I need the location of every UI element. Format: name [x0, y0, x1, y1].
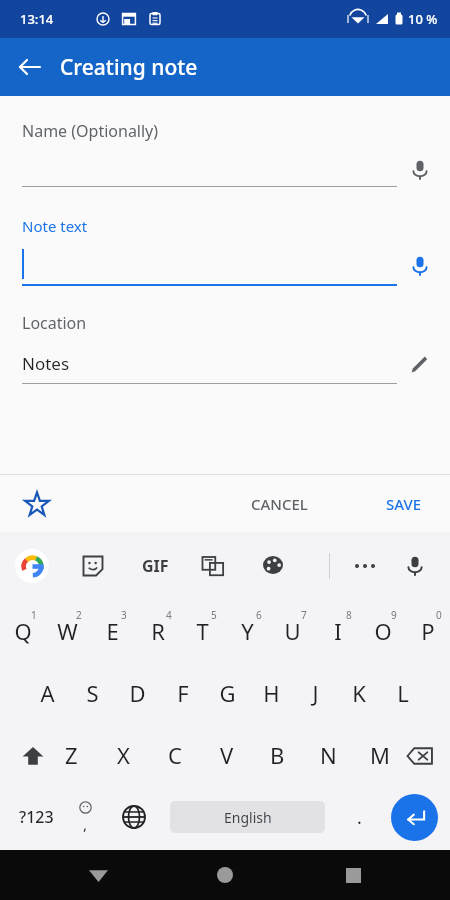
staticText: W [57, 616, 78, 646]
staticText: Location [22, 312, 87, 334]
button[interactable]: V [201, 724, 252, 786]
staticText: D [129, 678, 146, 708]
button[interactable]: A [25, 662, 70, 724]
button[interactable]: T [180, 600, 225, 662]
staticText: Creating note [60, 53, 198, 82]
staticText: Y [241, 616, 254, 646]
staticText: H [263, 678, 280, 708]
staticText: CANCEL [251, 494, 308, 514]
button[interactable]: More options [344, 545, 386, 587]
button[interactable]: G [205, 662, 249, 724]
button[interactable]: E [90, 600, 135, 662]
button[interactable]: D [115, 662, 160, 724]
staticText: 0 [436, 608, 442, 622]
staticText: 1 [31, 608, 37, 622]
button[interactable]: Themes [252, 545, 294, 587]
staticText: 4 [166, 608, 172, 622]
button[interactable]: F [160, 662, 205, 724]
staticText: 2 [76, 608, 82, 622]
button[interactable]: Voice typing [394, 545, 436, 587]
staticText: U [284, 616, 301, 646]
button[interactable]: U [270, 600, 315, 662]
staticText: R [151, 616, 165, 646]
button[interactable]: M [354, 724, 405, 786]
button[interactable]: J [293, 662, 337, 724]
staticText: SAVE [386, 494, 422, 514]
button[interactable]: Switch language [113, 796, 155, 838]
staticText: F [177, 678, 189, 708]
button[interactable]: Back [8, 45, 52, 89]
staticText: English [224, 808, 272, 827]
button[interactable]: Emoji [64, 796, 106, 838]
staticText: Note text [22, 216, 88, 236]
staticText: Notes [22, 352, 70, 375]
button[interactable]: Voice input for note [403, 249, 437, 283]
button[interactable]: Favorite [16, 483, 58, 525]
button[interactable]: K [337, 662, 381, 724]
staticText: I [334, 616, 342, 646]
button[interactable]: ?123 [10, 794, 62, 840]
staticText: V [220, 740, 234, 770]
button[interactable]: GIF [132, 545, 178, 587]
staticText: 5 [211, 608, 217, 622]
staticText: X [117, 740, 130, 770]
staticText: 6 [256, 608, 262, 622]
staticText: P [421, 616, 435, 646]
staticText: . [357, 805, 362, 830]
staticText: G [219, 678, 236, 708]
staticText: Name (Optionally) [22, 120, 159, 142]
button[interactable]: Stickers [72, 545, 114, 587]
button[interactable]: R [135, 600, 180, 662]
button[interactable]: Backspace [397, 733, 442, 778]
button[interactable]: S [70, 662, 115, 724]
button[interactable]: P [405, 600, 450, 662]
staticText: L [397, 678, 409, 708]
staticText: C [168, 740, 182, 770]
button[interactable]: X [97, 724, 149, 786]
button[interactable]: Voice input for name [403, 153, 437, 187]
button[interactable]: Y [225, 600, 270, 662]
staticText: E [106, 616, 119, 646]
button[interactable]: Q [0, 600, 45, 662]
button[interactable]: Home [195, 850, 255, 900]
button[interactable]: English [170, 801, 325, 833]
staticText: B [270, 740, 285, 770]
staticText: K [352, 678, 366, 708]
button[interactable]: H [249, 662, 293, 724]
staticText: 10 % [408, 10, 438, 28]
button[interactable]: . [340, 798, 378, 836]
button[interactable]: C [149, 724, 201, 786]
button[interactable]: I [315, 600, 360, 662]
button[interactable]: Google search [10, 544, 54, 588]
button[interactable]: Edit location [403, 347, 437, 381]
button[interactable]: Shift [10, 733, 55, 778]
button[interactable]: L [381, 662, 425, 724]
staticText: 8 [346, 608, 352, 622]
staticText: 9 [391, 608, 397, 622]
staticText: 13:14 [20, 10, 54, 28]
staticText: 7 [301, 608, 307, 622]
staticText: Z [65, 740, 78, 770]
button[interactable]: B [252, 724, 303, 786]
staticText: M [370, 740, 390, 770]
staticText: Q [14, 616, 32, 646]
staticText: S [86, 678, 99, 708]
staticText: J [312, 678, 319, 708]
staticText: , [83, 814, 88, 834]
staticText: 3 [121, 608, 127, 622]
button[interactable]: SAVE [376, 486, 432, 522]
button[interactable]: Z [45, 724, 97, 786]
button[interactable]: N [303, 724, 354, 786]
staticText: T [196, 616, 209, 646]
button[interactable]: Translate [192, 545, 234, 587]
staticText: O [374, 616, 392, 646]
button[interactable]: Enter [391, 794, 438, 841]
button[interactable]: W [45, 600, 90, 662]
staticText: ?123 [19, 806, 54, 828]
staticText: GIF [142, 555, 169, 577]
button[interactable]: Back [68, 850, 128, 900]
staticText: N [320, 740, 337, 770]
button[interactable]: O [360, 600, 405, 662]
button[interactable]: Recents [323, 850, 383, 900]
button[interactable]: CANCEL [241, 486, 318, 522]
